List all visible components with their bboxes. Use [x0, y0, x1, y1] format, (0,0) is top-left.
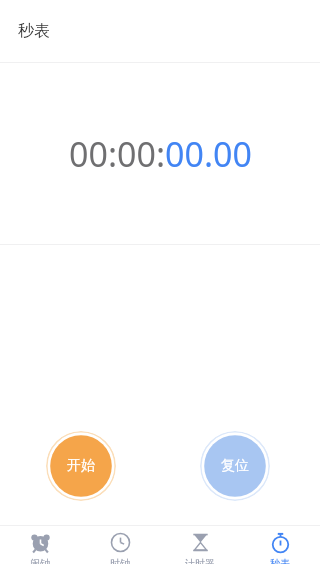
- staticText: 00:00:00.00: [69, 131, 252, 177]
- other: 计时器: [190, 532, 211, 553]
- staticText: 时钟: [110, 557, 130, 564]
- other: 时钟: [110, 532, 131, 553]
- staticText: 开始: [67, 457, 95, 475]
- staticText: 复位: [221, 457, 249, 475]
- button[interactable]: 秒表: [240, 526, 320, 570]
- button[interactable]: 时钟: [80, 526, 160, 570]
- other: 闹钟: [30, 532, 51, 553]
- button[interactable]: 复位: [200, 431, 270, 501]
- button[interactable]: 计时器: [160, 526, 240, 570]
- other: 秒表: [270, 532, 291, 553]
- button[interactable]: 开始: [46, 431, 116, 501]
- staticText: 闹钟: [30, 557, 50, 564]
- button[interactable]: 闹钟: [0, 526, 80, 570]
- staticText: 秒表: [270, 557, 290, 564]
- staticText: 秒表: [18, 21, 50, 41]
- staticText: 计时器: [185, 557, 215, 564]
